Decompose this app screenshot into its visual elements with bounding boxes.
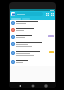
button[interactable]: Menu [11,12,15,16]
button[interactable] [16,12,43,16]
button[interactable]: List [50,12,54,16]
button[interactable] [10,20,55,27]
button[interactable] [22,18,30,20]
button[interactable] [10,34,55,41]
button[interactable]: Home [30,83,35,88]
button[interactable] [10,41,55,50]
button[interactable]: Back [17,83,22,88]
button[interactable] [10,59,55,66]
button[interactable]: Grid [45,12,49,16]
button[interactable] [11,18,21,20]
button[interactable]: Recent apps [43,83,48,88]
button[interactable] [10,50,55,59]
button[interactable] [10,27,55,34]
